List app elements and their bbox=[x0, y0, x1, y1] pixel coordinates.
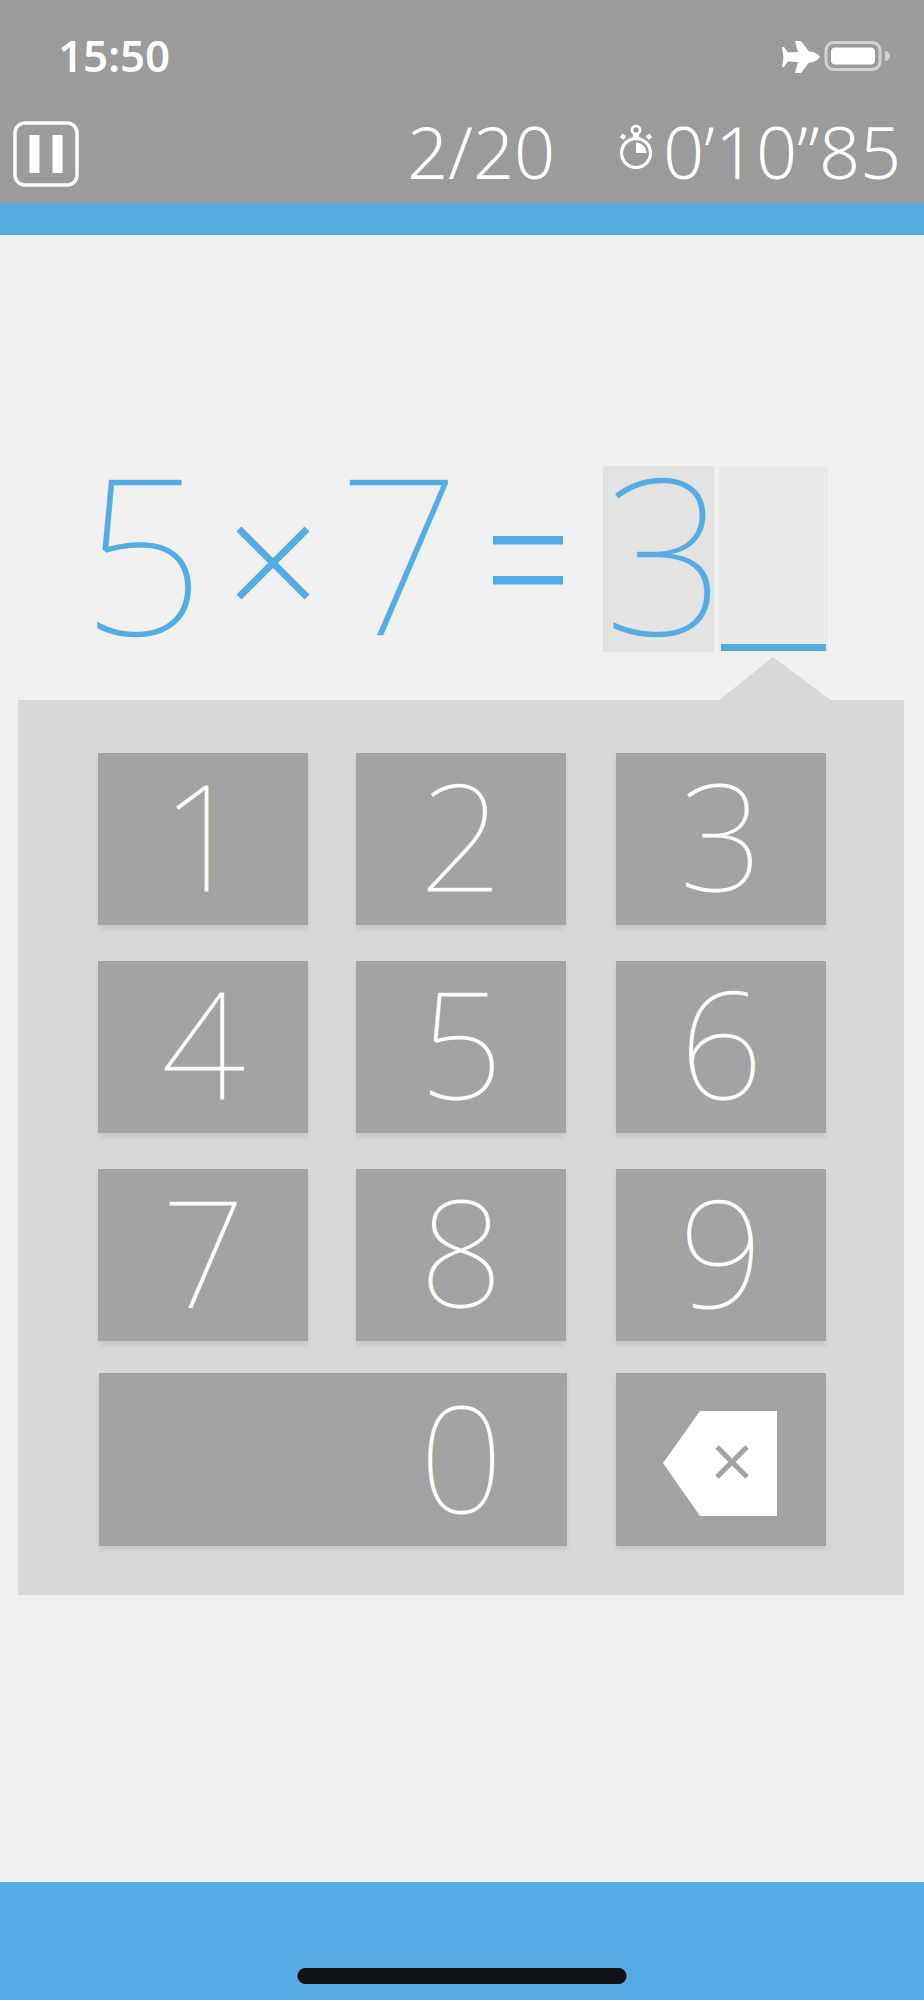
button[interactable]: 3 bbox=[616, 753, 826, 925]
staticText: 4 bbox=[161, 944, 245, 1140]
staticText: 1 bbox=[161, 736, 245, 932]
button[interactable]: Delete bbox=[616, 1373, 826, 1546]
staticText: 0 bbox=[419, 1358, 503, 1554]
staticText: 15:50 bbox=[58, 26, 170, 84]
staticText: 6 bbox=[679, 944, 763, 1140]
button[interactable]: 4 bbox=[98, 961, 308, 1133]
staticText: 2/20 bbox=[407, 103, 555, 199]
staticText: 0’10”85 bbox=[663, 103, 901, 199]
staticText: 7 bbox=[337, 407, 461, 695]
button[interactable]: 7 bbox=[98, 1169, 308, 1341]
button[interactable]: Pause bbox=[1, 109, 91, 199]
staticText: 8 bbox=[419, 1152, 503, 1348]
staticText: 9 bbox=[679, 1152, 763, 1348]
button[interactable]: 9 bbox=[616, 1169, 826, 1341]
staticText: 7 bbox=[161, 1152, 245, 1348]
button[interactable]: 5 bbox=[356, 961, 566, 1133]
staticText: 3 bbox=[603, 407, 727, 695]
button[interactable]: 6 bbox=[616, 961, 826, 1133]
button[interactable]: 0 bbox=[99, 1373, 567, 1546]
staticText: 3 bbox=[679, 736, 763, 932]
staticText: 5 bbox=[419, 944, 503, 1140]
button[interactable]: 1 bbox=[98, 753, 308, 925]
staticText: 5 bbox=[81, 407, 205, 695]
staticText: 2 bbox=[419, 736, 503, 932]
button[interactable]: 2 bbox=[356, 753, 566, 925]
button[interactable]: 8 bbox=[356, 1169, 566, 1341]
